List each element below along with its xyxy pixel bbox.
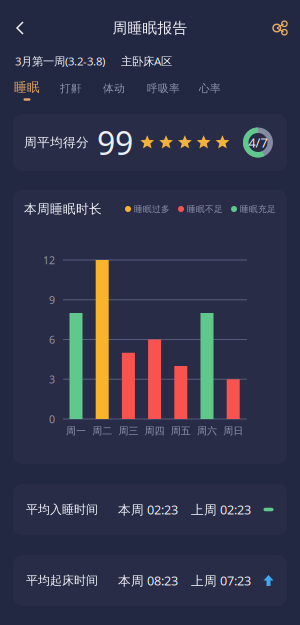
button[interactable]: 呼吸率 <box>147 79 180 100</box>
staticText: 周四 <box>145 425 165 437</box>
staticText: 4/7 <box>248 134 267 151</box>
staticText: 体动 <box>103 82 125 95</box>
staticText: 本周睡眠时长 <box>24 201 102 217</box>
staticText: 周六 <box>197 425 217 437</box>
staticText: 周平均得分 <box>24 134 89 150</box>
staticText: 周一 <box>66 425 86 437</box>
button[interactable]: 睡眠 <box>14 79 40 100</box>
staticText: 周二 <box>92 425 112 437</box>
button[interactable]: 分享 <box>260 12 300 44</box>
button[interactable]: 打鼾 <box>60 79 82 100</box>
staticText: 12 <box>43 253 55 267</box>
staticText: 平均起床时间 <box>26 573 98 588</box>
button[interactable]: 体动 <box>103 79 125 100</box>
staticText: 周睡眠报告 <box>112 19 187 37</box>
staticText: 打鼾 <box>60 82 82 95</box>
staticText: 主卧床A区 <box>121 53 172 69</box>
staticText: 9 <box>49 292 55 307</box>
button[interactable]: 平均入睡时间 <box>13 484 287 535</box>
button[interactable]: 平均起床时间 <box>13 555 287 606</box>
button[interactable]: 返回 <box>0 12 40 44</box>
staticText: 本周 02:23 <box>118 501 178 518</box>
staticText: 3月第一周(3.2-3.8) <box>15 53 105 69</box>
staticText: 周三 <box>118 425 138 437</box>
staticText: 本周 08:23 <box>118 572 178 589</box>
staticText: 99 <box>97 121 133 164</box>
staticText: 呼吸率 <box>147 82 180 95</box>
staticText: 睡眠过多 <box>134 203 170 214</box>
staticText: 睡眠不足 <box>187 203 223 214</box>
staticText: 睡眠 <box>14 79 40 95</box>
staticText: 睡眠充足 <box>240 203 276 214</box>
staticText: 平均入睡时间 <box>26 502 98 517</box>
button[interactable]: 心率 <box>199 79 221 100</box>
staticText: 上周 02:23 <box>191 501 251 518</box>
staticText: 上周 07:23 <box>191 572 251 589</box>
staticText: 3 <box>49 372 55 386</box>
staticText: 6 <box>49 332 55 347</box>
staticText: 周日 <box>223 425 243 437</box>
staticText: 周五 <box>171 425 191 437</box>
staticText: 0 <box>49 412 55 426</box>
staticText: 心率 <box>199 82 221 95</box>
